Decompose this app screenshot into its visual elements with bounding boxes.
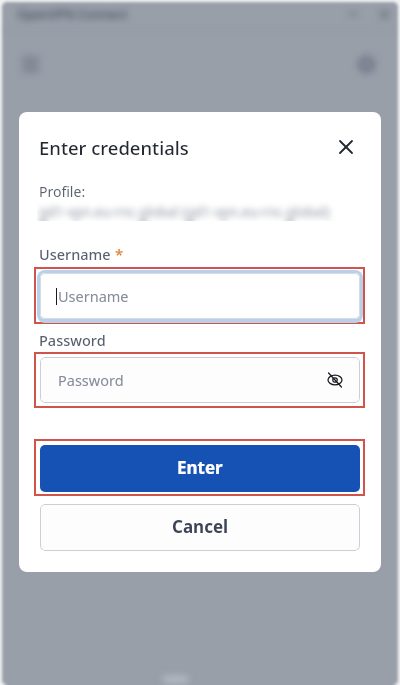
staticText: Username [58,286,129,306]
button[interactable]: Close [328,129,364,165]
staticText: Enter credentials [39,135,189,160]
staticText: * [115,244,124,264]
staticText: Password [39,330,106,350]
staticText: gd1-vpn.eu-rnc.global (gd1-vpn.eu-rnc.gl… [39,203,330,221]
button[interactable]: Cancel [40,504,360,551]
staticText: Password [58,370,124,390]
button[interactable]: Username [40,273,360,319]
button[interactable]: Show password [323,368,347,392]
staticText: Cancel [172,515,229,538]
staticText: Username [39,244,111,264]
staticText: OpenVPN Connect [17,6,128,23]
button[interactable]: Password [40,357,360,403]
button[interactable]: Enter [40,445,360,492]
staticText: Profile: [39,182,86,201]
staticText: Enter [177,456,223,479]
